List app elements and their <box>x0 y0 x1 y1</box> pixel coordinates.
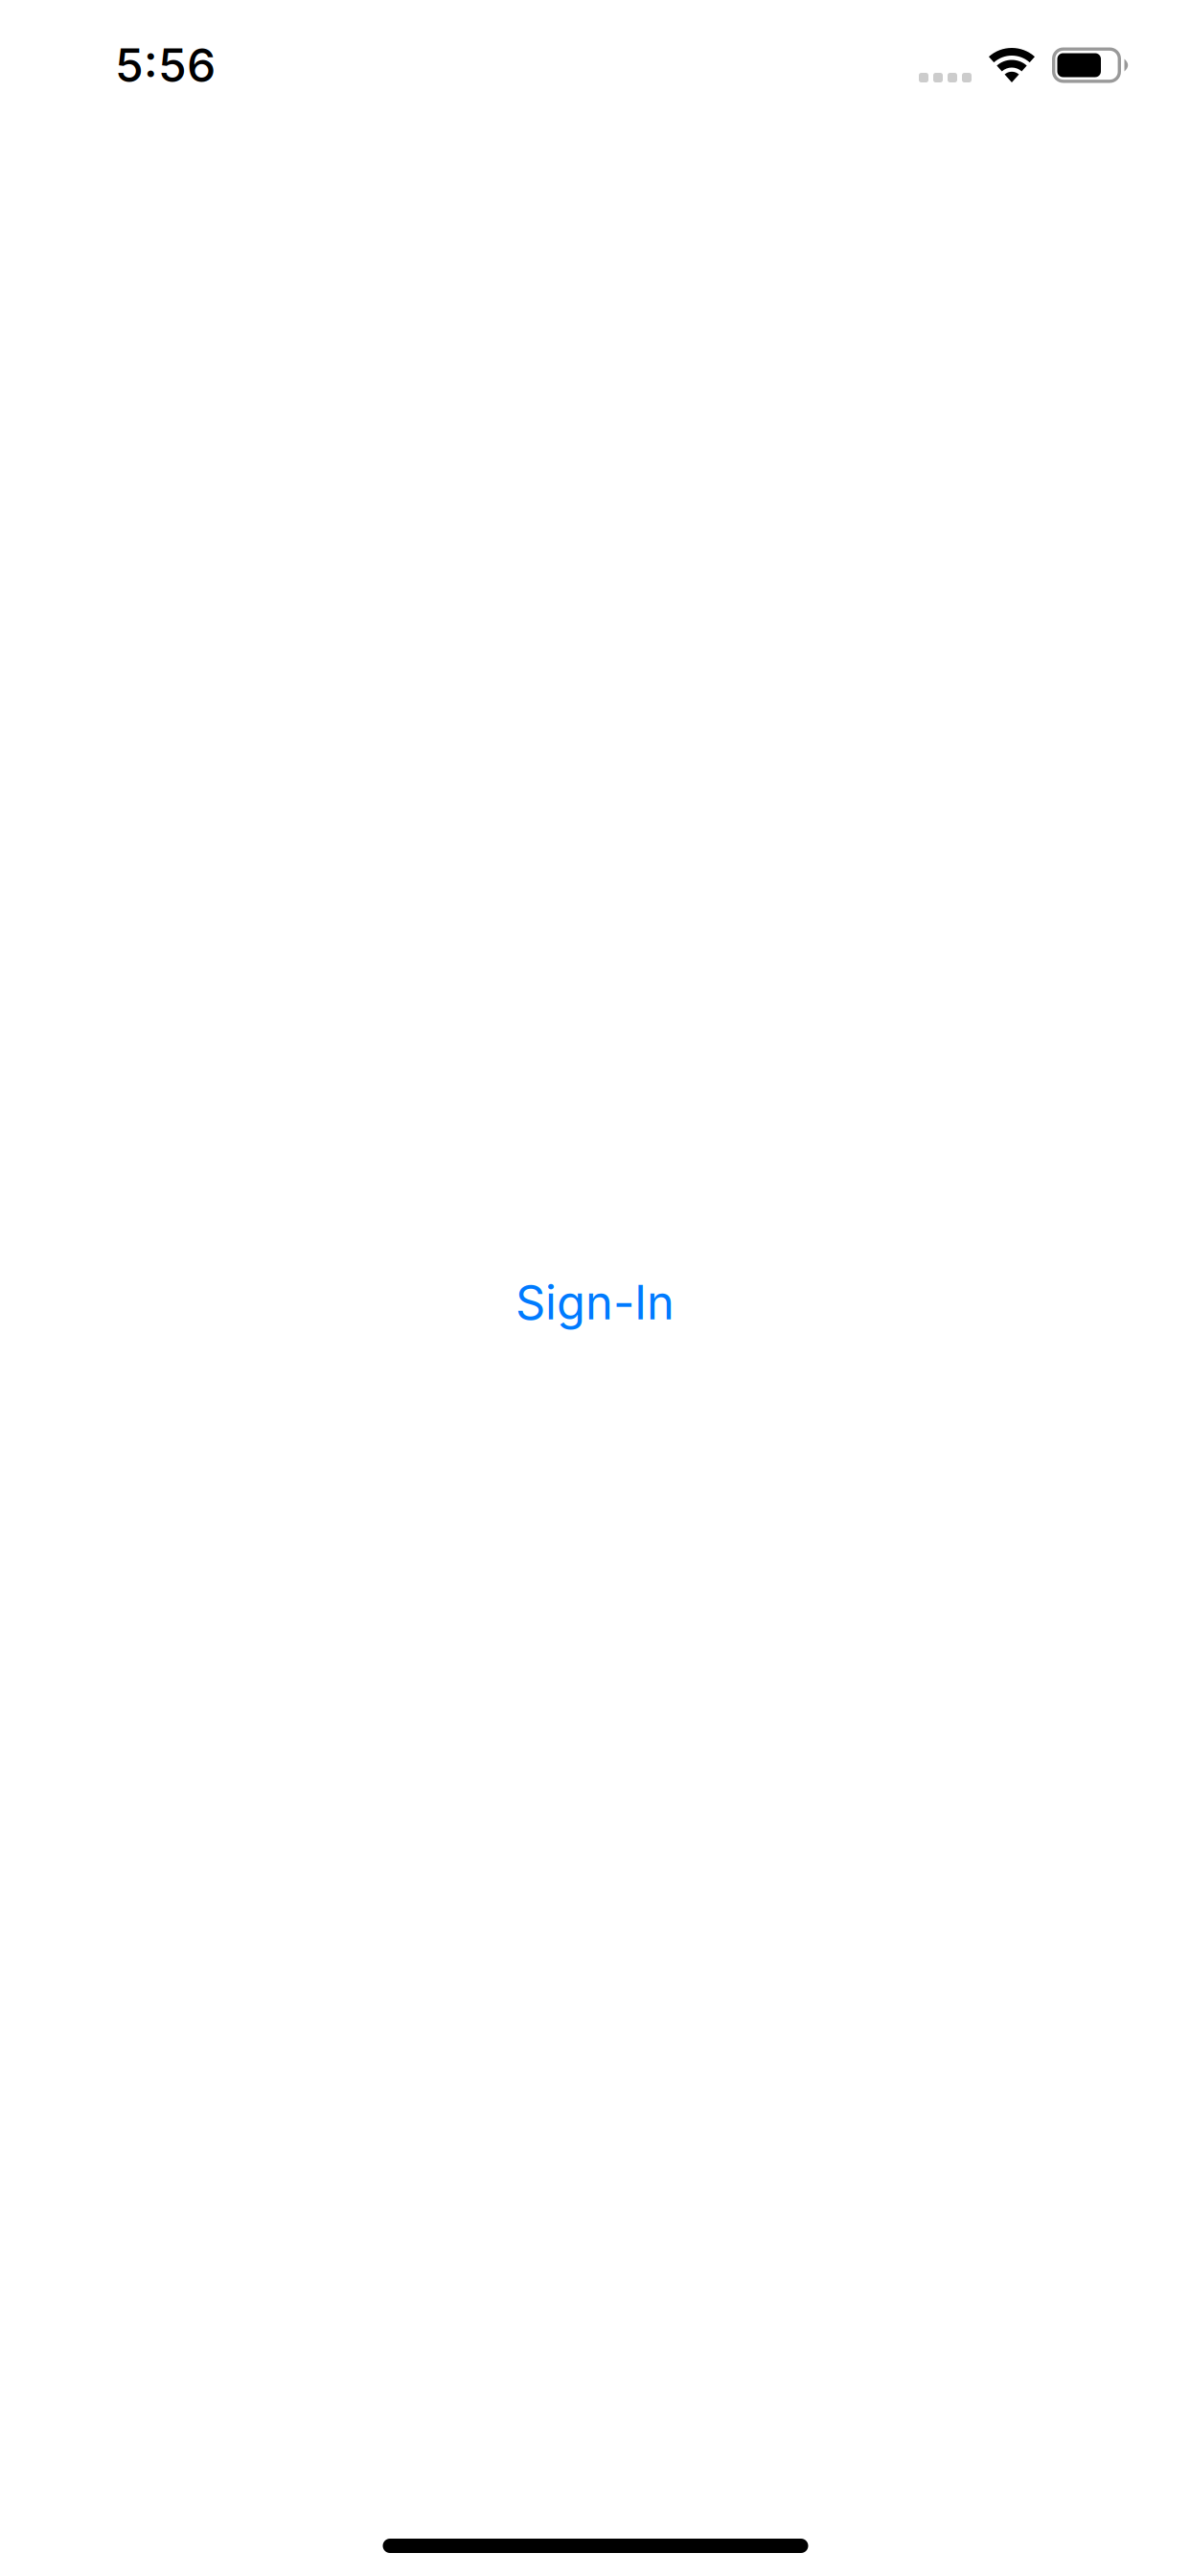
staticText: Sign-In <box>515 1274 675 1331</box>
staticText: 5:56 <box>115 37 216 93</box>
button[interactable]: Sign-In <box>451 1239 739 1366</box>
